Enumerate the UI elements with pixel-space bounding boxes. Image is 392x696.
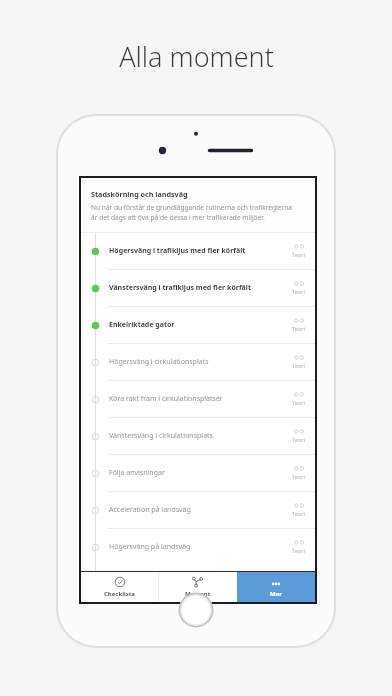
staticText: Stadskörning och landsväg	[91, 189, 188, 199]
staticText: Teori	[292, 510, 306, 518]
button[interactable]: Vänstersväng i cirkulationsplats	[81, 418, 315, 454]
button[interactable]: Högersväng i cirkulationsplats	[81, 344, 315, 380]
staticText: Checklista	[104, 590, 135, 598]
button[interactable]: Vänstersväng i trafikljus med fler körfä…	[81, 270, 315, 306]
staticText: Högersväng i cirkulationsplats	[109, 357, 292, 367]
staticText: Högersväng i trafikljus med fler körfält	[109, 246, 292, 256]
staticText: Alla moment	[119, 38, 274, 75]
staticText: Teori	[292, 473, 306, 481]
staticText: Mer	[270, 590, 282, 598]
staticText: Acceleration på landsväg	[109, 505, 292, 515]
staticText: Köra rakt fram i cirkulationsplatser	[109, 394, 292, 404]
button[interactable]: Högersväng på landsväg	[81, 529, 315, 565]
staticText: Teori	[292, 547, 306, 555]
button[interactable]: Checklista	[81, 572, 158, 602]
staticText: Vänstersväng i cirkulationsplats	[109, 431, 292, 441]
staticText: Högersväng på landsväg	[109, 542, 292, 552]
button[interactable]: Acceleration på landsväg	[81, 492, 315, 528]
button[interactable]: Högersväng i trafikljus med fler körfält	[81, 233, 315, 269]
staticText: Teori	[292, 251, 306, 259]
staticText: Enkelriktade gator	[109, 320, 292, 330]
staticText: Teori	[292, 436, 306, 444]
staticText: Nu när du förstår de grundläggande rutin…	[91, 203, 293, 222]
staticText: Moment	[185, 590, 211, 598]
staticText: Följa anvisningar	[109, 468, 292, 478]
staticText: Teori	[292, 325, 306, 333]
button[interactable]: Mer	[237, 572, 315, 602]
staticText: Teori	[292, 399, 306, 407]
staticText: Teori	[292, 288, 306, 296]
staticText: Vänstersväng i trafikljus med fler körfä…	[109, 283, 292, 293]
button[interactable]: Köra rakt fram i cirkulationsplatser	[81, 381, 315, 417]
button[interactable]: Enkelriktade gator	[81, 307, 315, 343]
button[interactable]: Moment	[159, 572, 237, 602]
button[interactable]: Följa anvisningar	[81, 455, 315, 491]
staticText: Teori	[292, 362, 306, 370]
